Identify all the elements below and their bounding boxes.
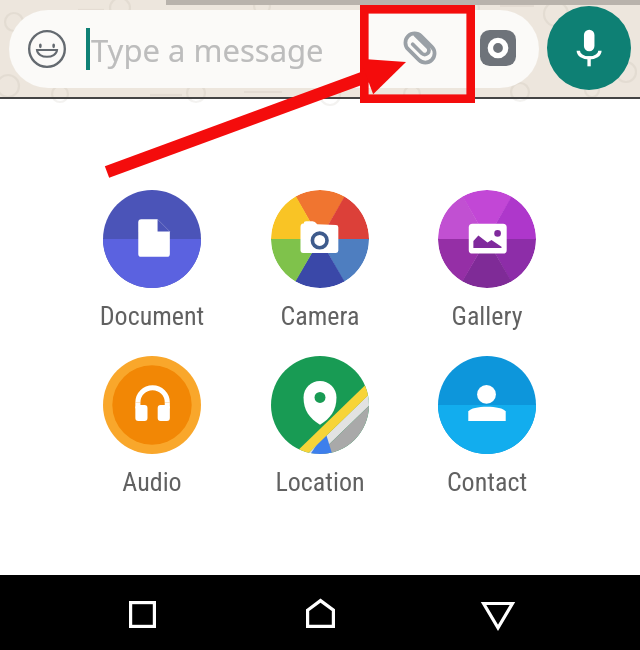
button[interactable]: Location <box>247 350 393 500</box>
button[interactable]: Camera <box>470 20 526 76</box>
button[interactable]: Recents <box>106 578 178 650</box>
staticText: Camera <box>247 301 393 331</box>
button[interactable]: Emoji <box>18 20 75 77</box>
button[interactable]: Gallery <box>414 184 560 334</box>
staticText: Type a message <box>91 29 324 71</box>
staticText: Document <box>79 301 225 331</box>
button[interactable]: Camera <box>247 184 393 334</box>
button[interactable]: Attach <box>392 20 448 76</box>
button[interactable]: Voice message <box>547 6 631 90</box>
staticText: Location <box>247 467 393 497</box>
button[interactable]: Contact <box>414 350 560 500</box>
staticText: Contact <box>414 467 560 497</box>
button[interactable]: Document <box>79 184 225 334</box>
button[interactable]: Home <box>284 577 356 649</box>
button[interactable]: Back <box>462 579 534 650</box>
staticText: Audio <box>79 467 225 497</box>
button[interactable]: Audio <box>79 350 225 500</box>
staticText: Gallery <box>414 301 560 331</box>
